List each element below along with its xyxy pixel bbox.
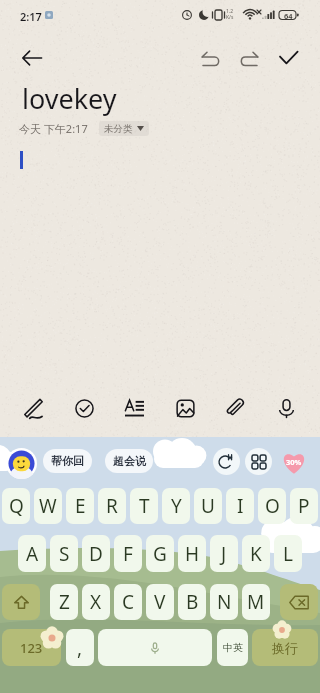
staticText: F (123, 541, 133, 567)
staticText: 今天 下午2:17 (19, 121, 88, 136)
button[interactable]: 未分类 (99, 121, 149, 136)
button[interactable]: O (258, 488, 286, 524)
button[interactable]: E (66, 488, 94, 524)
staticText: D (89, 541, 103, 567)
staticText: E (75, 493, 86, 519)
staticText: 30% (286, 457, 302, 467)
button[interactable]: Y (162, 488, 190, 524)
button[interactable]: Redo (233, 42, 265, 74)
button[interactable]: , (66, 629, 94, 666)
staticText: H (185, 541, 200, 567)
button[interactable]: S (50, 535, 78, 572)
button[interactable]: Promotion (280, 448, 308, 476)
button[interactable]: I (226, 488, 254, 524)
button[interactable]: M (242, 584, 270, 620)
staticText: A (26, 541, 39, 567)
staticText: R (106, 493, 118, 519)
button[interactable]: C (114, 584, 142, 620)
button[interactable]: T (130, 488, 158, 524)
staticText: N (217, 589, 232, 615)
button[interactable]: D (82, 535, 110, 572)
button[interactable]: F (114, 535, 142, 572)
button[interactable]: 帮你回 (43, 449, 92, 473)
button[interactable]: Z (50, 584, 78, 620)
staticText: 64 (284, 11, 293, 21)
staticText: lovekey (22, 80, 117, 117)
staticText: U (201, 493, 215, 519)
staticText: V (154, 589, 166, 615)
button[interactable]: V (146, 584, 174, 620)
button[interactable]: Undo (195, 42, 227, 74)
button[interactable]: N (210, 584, 238, 620)
staticText: M (247, 589, 265, 615)
button[interactable]: Back (16, 42, 48, 74)
staticText: 帮你回 (51, 454, 84, 468)
button[interactable]: 123 (2, 629, 61, 666)
button[interactable]: Draw (15, 390, 51, 426)
button[interactable]: 换行 (252, 629, 318, 666)
staticText: J (221, 541, 227, 567)
button[interactable]: K (242, 535, 270, 572)
button[interactable]: Attach (217, 390, 253, 426)
button[interactable]: R (98, 488, 126, 524)
staticText: , (77, 635, 83, 661)
button[interactable]: Greeting (213, 448, 240, 475)
button[interactable]: P (290, 488, 318, 524)
button[interactable]: A (18, 535, 46, 572)
staticText: Q (9, 493, 24, 519)
button[interactable]: Image (167, 390, 203, 426)
button[interactable]: G (146, 535, 174, 572)
button[interactable]: Voice (268, 390, 304, 426)
staticText: T (139, 493, 150, 519)
staticText: 换行 (272, 640, 298, 656)
button[interactable]: B (178, 584, 206, 620)
staticText: 1.2 K/s (226, 8, 234, 21)
staticText: K (250, 541, 262, 567)
staticText: 123 (20, 639, 43, 657)
staticText: 2:17 (20, 9, 42, 24)
staticText: P (298, 493, 310, 519)
button[interactable]: J (210, 535, 238, 572)
button[interactable]: Q (2, 488, 30, 524)
staticText: S (59, 541, 70, 567)
staticText: 中英 (223, 641, 243, 654)
staticText: 超会说 (113, 454, 146, 468)
button[interactable]: 中英 (217, 629, 248, 666)
staticText: L (283, 541, 293, 567)
staticText: Y (171, 493, 182, 519)
button[interactable]: Done (272, 42, 304, 74)
button[interactable]: X (82, 584, 110, 620)
staticText: C (122, 589, 135, 615)
button[interactable]: L (274, 535, 302, 572)
button[interactable]: H (178, 535, 206, 572)
button[interactable]: Space (98, 629, 212, 666)
button[interactable]: More (245, 448, 272, 475)
staticText: I (237, 493, 244, 519)
button[interactable]: Shift (2, 584, 40, 620)
staticText: O (265, 493, 280, 519)
staticText: X (90, 589, 102, 615)
button[interactable]: Assistant (6, 448, 37, 479)
button[interactable]: 超会说 (105, 449, 153, 473)
staticText: B (186, 589, 199, 615)
staticText: W (39, 493, 57, 519)
button[interactable]: U (194, 488, 222, 524)
staticText: Z (59, 589, 70, 615)
button[interactable]: Backspace (280, 584, 318, 620)
button[interactable]: W (34, 488, 62, 524)
button[interactable]: Checklist (66, 390, 102, 426)
staticText: G (153, 541, 167, 567)
button[interactable]: Format (116, 390, 152, 426)
staticText: 未分类 (104, 123, 133, 135)
